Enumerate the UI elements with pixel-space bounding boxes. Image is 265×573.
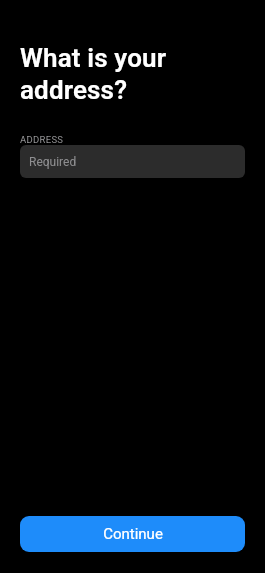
staticText: ADDRESS <box>20 134 64 145</box>
staticText: What is your address? <box>20 43 249 105</box>
button[interactable]: Required <box>20 145 245 178</box>
staticText: Continue <box>103 525 163 543</box>
button[interactable]: Continue <box>20 516 245 552</box>
staticText: Required <box>29 155 77 169</box>
